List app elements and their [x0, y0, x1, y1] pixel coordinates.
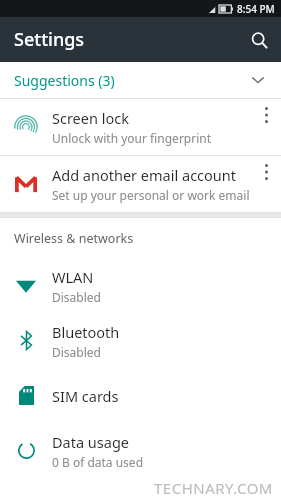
staticText: Data usage [52, 432, 129, 452]
staticText: Set up your personal or work email [52, 187, 250, 203]
button[interactable]: Data usage [0, 423, 281, 478]
button[interactable]: More options [251, 99, 281, 155]
staticText: Unlock with your fingerprint [52, 130, 212, 146]
staticText: Add another email account [52, 165, 236, 185]
button[interactable]: Search [237, 18, 281, 62]
button[interactable]: More options [251, 156, 281, 212]
button[interactable]: WLAN [0, 258, 281, 313]
staticText: Bluetooth [52, 322, 120, 342]
staticText: Suggestions (3) [14, 71, 115, 90]
staticText: Disabled [52, 344, 101, 360]
button[interactable]: SIM cards [0, 368, 281, 423]
button[interactable]: Suggestions (3) [0, 62, 281, 98]
staticText: Settings [14, 27, 85, 52]
staticText: TECHNARY.COM [154, 478, 273, 496]
staticText: Disabled [52, 289, 101, 305]
button[interactable]: Add another email account [0, 156, 281, 212]
staticText: Wireless & networks [14, 230, 134, 247]
staticText: 8:54 PM [237, 2, 275, 16]
button[interactable]: Screen lock [0, 99, 281, 155]
button[interactable]: Bluetooth [0, 313, 281, 368]
staticText: WLAN [52, 267, 94, 287]
staticText: 0 B of data used [52, 454, 144, 470]
staticText: Screen lock [52, 108, 129, 128]
staticText: SIM cards [52, 386, 119, 406]
